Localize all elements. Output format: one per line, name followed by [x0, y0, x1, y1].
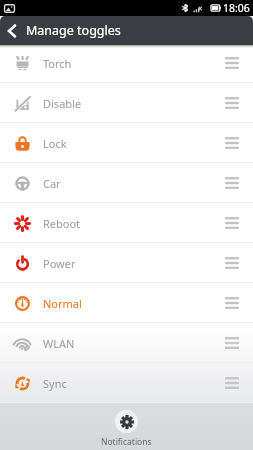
- staticText: 18:06: [223, 1, 250, 15]
- staticText: Power: [43, 256, 76, 271]
- button[interactable]: Back: [0, 16, 24, 45]
- button[interactable]: Sync: [0, 363, 253, 403]
- staticText: WLAN: [43, 336, 75, 351]
- staticText: Disable: [43, 96, 82, 111]
- button[interactable]: Torch: [0, 43, 253, 83]
- button[interactable]: Reboot: [0, 203, 253, 243]
- button[interactable]: Power: [0, 243, 253, 283]
- button[interactable]: Lock: [0, 123, 253, 163]
- staticText: Normal: [43, 296, 82, 311]
- staticText: Sync: [43, 376, 67, 391]
- staticText: Notifications: [101, 436, 152, 448]
- button[interactable]: Disable: [0, 83, 253, 123]
- button[interactable]: Normal: [0, 283, 253, 323]
- button[interactable]: WLAN: [0, 323, 253, 363]
- staticText: Car: [43, 176, 61, 191]
- staticText: Torch: [43, 56, 72, 71]
- button[interactable]: Car: [0, 163, 253, 203]
- staticText: Reboot: [43, 216, 81, 231]
- button[interactable]: Notifications: [101, 410, 152, 448]
- staticText: Lock: [43, 136, 67, 151]
- staticText: Manage toggles: [26, 22, 121, 39]
